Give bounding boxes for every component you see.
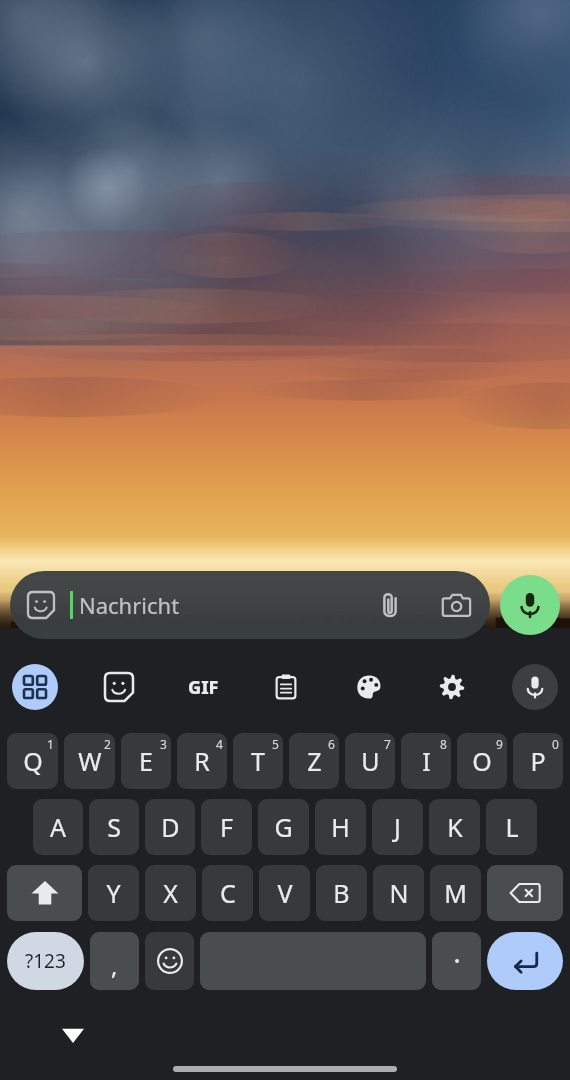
staticText: M	[444, 876, 467, 910]
staticText: X	[163, 876, 178, 910]
button[interactable]: X	[145, 865, 196, 921]
staticText: 0	[552, 736, 559, 752]
button[interactable]: Y	[88, 865, 139, 921]
button[interactable]: F	[201, 799, 252, 855]
button[interactable]: ,	[90, 932, 139, 990]
button[interactable]: L	[486, 799, 537, 855]
button[interactable]: Q	[7, 733, 58, 789]
staticText: 1	[47, 736, 54, 752]
button[interactable]: G	[258, 799, 309, 855]
button[interactable]: M	[430, 865, 481, 921]
button[interactable]: U	[345, 733, 395, 789]
button[interactable]: B	[316, 865, 367, 921]
button[interactable]: Space	[200, 932, 426, 990]
button[interactable]: Settings	[429, 664, 475, 710]
staticText: G	[274, 810, 293, 844]
staticText: 9	[496, 736, 503, 752]
staticText: Q	[23, 744, 43, 778]
button[interactable]: GIF	[180, 664, 226, 710]
staticText: F	[220, 810, 233, 844]
staticText: 5	[272, 736, 279, 752]
staticText: Z	[307, 744, 322, 778]
button[interactable]: Attach	[370, 585, 410, 625]
staticText: H	[331, 810, 350, 844]
staticText: 7	[384, 736, 391, 752]
button[interactable]: Voice input	[512, 664, 558, 710]
button[interactable]: W	[64, 733, 115, 789]
button[interactable]: All apps	[12, 664, 58, 710]
button[interactable]: H	[315, 799, 366, 855]
button[interactable]: Sticker	[24, 588, 58, 622]
button[interactable]: T	[233, 733, 283, 789]
staticText: R	[194, 744, 210, 778]
button[interactable]: D	[145, 799, 195, 855]
staticText: O	[472, 744, 492, 778]
staticText: L	[505, 810, 519, 844]
button[interactable]: ?123	[7, 932, 84, 990]
staticText: K	[447, 810, 463, 844]
button[interactable]: Voice message	[500, 575, 560, 635]
staticText: ?123	[25, 948, 66, 974]
staticText: S	[107, 810, 121, 844]
staticText: U	[361, 744, 380, 778]
button[interactable]: P	[513, 733, 563, 789]
button[interactable]: A	[33, 799, 83, 855]
button[interactable]: J	[372, 799, 423, 855]
staticText: 8	[440, 736, 447, 752]
staticText: E	[139, 744, 153, 778]
button[interactable]: Themes	[346, 664, 392, 710]
button[interactable]: V	[259, 865, 310, 921]
staticText: 3	[160, 736, 167, 752]
button[interactable]: E	[121, 733, 171, 789]
staticText: T	[251, 744, 265, 778]
staticText: P	[530, 744, 546, 778]
staticText: D	[161, 810, 180, 844]
staticText: 4	[216, 736, 223, 752]
button[interactable]: O	[457, 733, 507, 789]
button[interactable]: K	[429, 799, 480, 855]
button[interactable]: C	[202, 865, 253, 921]
button[interactable]: Clipboard	[263, 664, 309, 710]
staticText: I	[422, 744, 431, 778]
staticText: J	[394, 810, 401, 844]
button[interactable]: Camera	[436, 585, 476, 625]
button[interactable]: Emoji	[145, 932, 194, 990]
staticText: B	[333, 876, 350, 910]
button[interactable]: Shift	[7, 865, 82, 921]
button[interactable]: S	[89, 799, 139, 855]
staticText: W	[78, 744, 102, 778]
staticText: ,	[111, 949, 118, 982]
staticText: 2	[104, 736, 111, 752]
button[interactable]: N	[373, 865, 424, 921]
button[interactable]: Stickers	[96, 664, 142, 710]
staticText: N	[389, 876, 409, 910]
staticText: V	[277, 876, 293, 910]
staticText: Nachricht	[79, 590, 180, 620]
staticText: Y	[106, 876, 121, 910]
staticText: C	[220, 876, 236, 910]
staticText: GIF	[188, 675, 219, 700]
staticText: 6	[328, 736, 335, 752]
button[interactable]	[432, 932, 481, 990]
staticText: A	[50, 810, 66, 844]
button[interactable]: Sticker	[10, 571, 490, 639]
button[interactable]: Backspace	[487, 865, 563, 921]
button[interactable]: Hide keyboard	[58, 1020, 88, 1050]
button[interactable]: I	[401, 733, 451, 789]
button[interactable]: R	[177, 733, 227, 789]
button[interactable]: Enter	[487, 932, 563, 990]
button[interactable]: Z	[289, 733, 339, 789]
